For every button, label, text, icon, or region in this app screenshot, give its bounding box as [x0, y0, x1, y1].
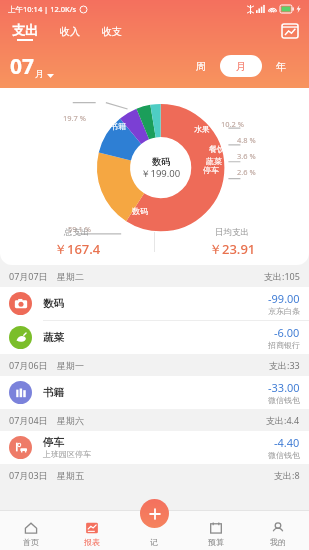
- staticText: 星期六: [57, 415, 84, 426]
- staticText: 数码: [43, 297, 64, 310]
- staticText: 支出:33: [269, 359, 300, 371]
- staticText: 蔬菜: [43, 331, 64, 344]
- button[interactable]: 记: [123, 510, 185, 550]
- staticText: 3.6 %: [237, 151, 256, 161]
- staticText: 微信钱包: [268, 395, 300, 405]
- staticText: 支出:8: [274, 469, 300, 481]
- staticText: 记: [150, 537, 158, 547]
- staticText: 首页: [23, 537, 39, 547]
- staticText: 蔬菜: [206, 156, 222, 166]
- staticText: -99.00: [268, 291, 300, 306]
- staticText: ITMOP.COM: [193, 509, 292, 532]
- button[interactable]: Chart report: [279, 20, 301, 42]
- button[interactable]: 年: [268, 55, 294, 77]
- staticText: ￥167.4: [54, 240, 101, 258]
- staticText: 2.6 %: [237, 167, 256, 177]
- staticText: 京东白条: [268, 306, 300, 316]
- staticText: 餐饮: [209, 144, 225, 154]
- staticText: 星期五: [57, 470, 84, 481]
- staticText: 周: [196, 60, 206, 73]
- staticText: 07月06日: [9, 359, 48, 371]
- staticText: 19.7 %: [63, 113, 87, 123]
- button[interactable]: 蔬菜: [0, 321, 309, 354]
- staticText: 总支出: [64, 227, 90, 238]
- staticText: 上班园区停车: [43, 449, 91, 459]
- staticText: ￥23.91: [209, 240, 256, 258]
- staticText: 星期一: [57, 360, 84, 371]
- staticText: 数码: [152, 156, 170, 167]
- button[interactable]: 周: [188, 55, 214, 77]
- staticText: 报表: [84, 537, 100, 547]
- staticText: -33.00: [268, 380, 300, 395]
- button[interactable]: 我的: [247, 510, 309, 550]
- button[interactable]: 书籍: [0, 376, 309, 409]
- button[interactable]: 预算: [185, 510, 247, 550]
- staticText: 日均支出: [215, 227, 249, 238]
- staticText: 支出:4.4: [266, 414, 300, 426]
- button[interactable]: 首页: [0, 510, 61, 550]
- staticText: -6.00: [274, 325, 300, 340]
- staticText: 07月07日: [9, 270, 48, 282]
- staticText: 书籍: [110, 121, 126, 131]
- staticText: 4.8 %: [237, 135, 256, 145]
- staticText: 水果: [194, 124, 210, 134]
- staticText: 微信钱包: [268, 450, 300, 460]
- button[interactable]: 报表: [61, 510, 123, 550]
- staticText: 07月03日: [9, 469, 48, 481]
- staticText: 招商银行: [268, 340, 300, 350]
- staticText: 10.2 %: [221, 119, 245, 129]
- staticText: -4.40: [274, 435, 300, 450]
- button[interactable]: Add record: [140, 499, 169, 528]
- button[interactable]: 停车: [0, 431, 309, 464]
- staticText: 支出:105: [264, 270, 300, 282]
- button[interactable]: 收支: [100, 25, 124, 38]
- staticText: 上午10:14 | 12.0K/s: [8, 4, 77, 14]
- staticText: 书籍: [43, 386, 64, 399]
- staticText: 收入: [60, 25, 80, 38]
- staticText: 停车: [43, 436, 64, 449]
- staticText: ￥199.00: [141, 167, 181, 180]
- staticText: 停车: [203, 165, 219, 175]
- staticText: 07月04日: [9, 414, 48, 426]
- staticText: 我的: [270, 537, 286, 547]
- staticText: 预算: [208, 537, 224, 547]
- staticText: 收支: [102, 25, 122, 38]
- staticText: 月: [236, 60, 246, 73]
- staticText: 支出: [12, 22, 38, 38]
- button[interactable]: 收入: [58, 25, 82, 38]
- staticText: 月: [35, 68, 44, 79]
- button[interactable]: 数码: [0, 287, 309, 321]
- button[interactable]: 月: [220, 55, 262, 77]
- staticText: 07: [10, 52, 35, 81]
- staticText: 星期二: [57, 271, 84, 282]
- staticText: 年: [276, 60, 286, 73]
- staticText: 数码: [132, 206, 148, 216]
- button[interactable]: 支出: [10, 22, 40, 41]
- staticText: 59.1 %: [68, 224, 92, 234]
- button[interactable]: 07: [10, 52, 54, 81]
